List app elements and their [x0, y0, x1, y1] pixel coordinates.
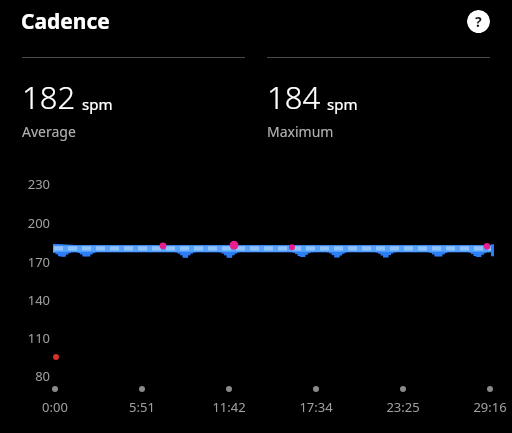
staticText: 140: [27, 291, 50, 309]
staticText: Cadence: [21, 7, 110, 36]
staticText: 23:25: [386, 398, 420, 416]
staticText: ?: [475, 12, 482, 31]
staticText: spm: [327, 94, 358, 114]
staticText: 11:42: [212, 398, 246, 416]
button[interactable]: Cadence: [21, 7, 110, 36]
staticText: 182: [22, 76, 76, 118]
button[interactable]: 184: [267, 76, 358, 141]
button[interactable]: Help: [467, 10, 490, 33]
staticText: 110: [27, 329, 50, 347]
staticText: 184: [267, 76, 321, 118]
staticText: 0:00: [42, 398, 68, 416]
staticText: 230: [27, 175, 50, 193]
button[interactable]: 182: [22, 76, 113, 141]
staticText: spm: [82, 94, 113, 114]
staticText: 5:51: [129, 398, 155, 416]
staticText: 29:16: [473, 398, 507, 416]
staticText: 170: [27, 253, 50, 271]
staticText: 17:34: [299, 398, 333, 416]
staticText: 200: [27, 214, 50, 232]
staticText: Average: [22, 122, 76, 141]
staticText: Maximum: [267, 122, 334, 141]
staticText: 80: [35, 367, 50, 385]
